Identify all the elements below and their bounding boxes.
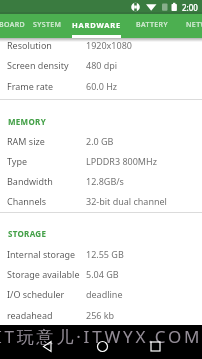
staticText: Internal storage (7, 248, 76, 260)
staticText: 5.04 GB (86, 268, 119, 280)
button[interactable]: NETWORK (186, 14, 202, 38)
staticText: 1920x1080 (86, 39, 132, 51)
staticText: 480 dpi (86, 59, 118, 71)
staticText: Resolution (7, 39, 52, 51)
staticText: BOARD (0, 20, 26, 30)
staticText: Bandwidth (7, 175, 53, 187)
button[interactable] (95, 339, 110, 354)
staticText: STORAGE (8, 228, 47, 239)
staticText: IT玩意儿·ITWYX.COM (0, 325, 198, 348)
staticText: BATTERY (136, 20, 168, 30)
button[interactable]: BATTERY (136, 14, 168, 38)
staticText: 12.8GB/s (86, 175, 124, 187)
button[interactable]: HARDWARE (72, 14, 121, 38)
staticText: LPDDR3 800MHz (86, 155, 157, 167)
staticText: Type (7, 155, 28, 167)
staticText: RAM size (7, 135, 45, 147)
staticText: 2.0 GB (86, 135, 114, 147)
staticText: NETWORK (186, 20, 202, 30)
staticText: HARDWARE (72, 20, 121, 30)
staticText: Storage available (7, 268, 80, 280)
staticText: 12.55 GB (86, 248, 124, 260)
staticText: 256 kb (86, 309, 115, 321)
staticText: deadline (86, 288, 123, 300)
staticText: 32-bit dual channel (86, 195, 167, 207)
staticText: I/O scheduler (7, 288, 65, 300)
button[interactable]: SYSTEM (33, 14, 62, 38)
staticText: Channels (7, 195, 47, 207)
staticText: MEMORY (8, 116, 46, 127)
button[interactable] (148, 339, 163, 354)
staticText: readahead (7, 309, 53, 321)
staticText: Screen density (7, 59, 69, 71)
button[interactable]: BOARD (0, 14, 26, 38)
staticText: 2:00 (182, 2, 198, 13)
staticText: SYSTEM (33, 20, 62, 30)
staticText: Frame rate (7, 80, 53, 92)
staticText: 60.0 Hz (86, 80, 118, 92)
button[interactable] (40, 339, 55, 354)
